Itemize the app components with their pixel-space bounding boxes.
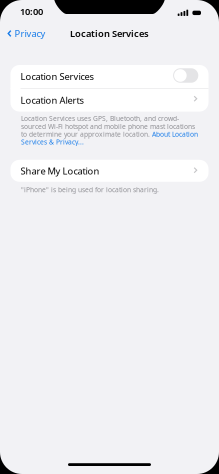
button[interactable]: Share My Location [10, 160, 208, 182]
staticText: Location Services uses GPS, Bluetooth, a… [21, 114, 179, 123]
staticText: Share My Location [20, 165, 99, 177]
staticText: Location Services [70, 27, 149, 40]
staticText: to determine your approximate location. [21, 130, 152, 139]
staticText: Privacy [15, 27, 46, 40]
staticText: 10:00 [20, 5, 43, 18]
button[interactable]: Privacy [0, 24, 46, 43]
staticText: sourced Wi-Fi hotspot and mobile phone m… [21, 122, 195, 131]
staticText: Location Alerts [20, 94, 83, 106]
button[interactable]: Location Alerts [10, 89, 208, 112]
staticText: Services & Privacy... [21, 137, 84, 146]
staticText: "iPhone" is being used for location shar… [21, 185, 159, 194]
staticText: About Location [152, 130, 198, 139]
button[interactable]: Location Services [10, 65, 208, 88]
staticText: Location Services [20, 70, 93, 83]
